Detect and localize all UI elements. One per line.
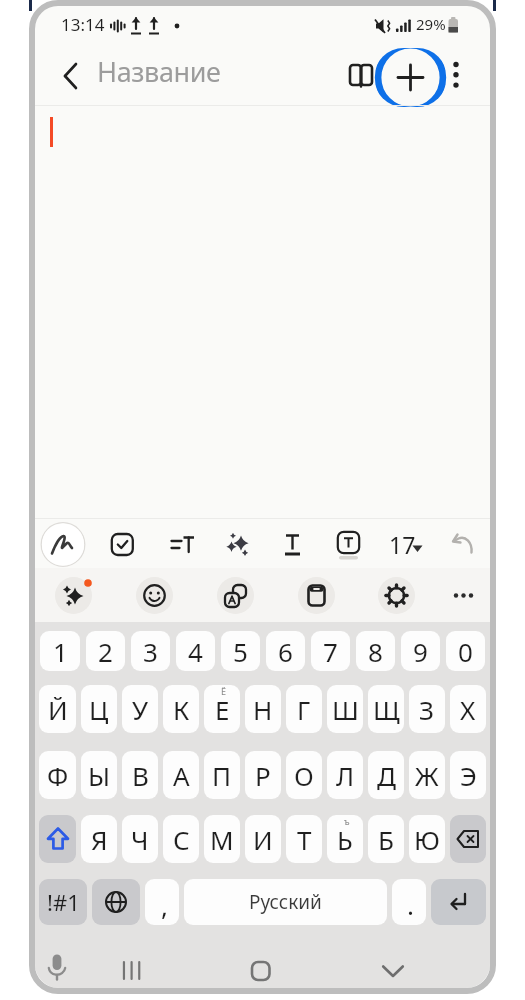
button[interactable]: Ф (39, 751, 76, 799)
button[interactable] (219, 523, 262, 566)
staticText: В (132, 758, 149, 793)
staticText: 0 (458, 634, 473, 669)
button[interactable] (39, 815, 76, 863)
button[interactable]: О (286, 751, 322, 799)
staticText: П (212, 758, 232, 793)
staticText: С (173, 822, 190, 857)
button[interactable] (55, 577, 92, 614)
button[interactable] (217, 577, 254, 614)
button[interactable]: 17 (379, 523, 431, 566)
staticText: Д (377, 758, 396, 793)
staticText: Я (91, 822, 108, 857)
button[interactable] (101, 523, 144, 566)
staticText: 3 (143, 634, 158, 669)
button[interactable]: Д (368, 751, 404, 799)
staticText: И (253, 822, 273, 857)
button[interactable] (431, 879, 486, 925)
button[interactable]: С (163, 815, 199, 863)
button[interactable]: Ь (327, 815, 363, 863)
staticText: Ж (415, 758, 439, 793)
staticText: 17 (389, 529, 416, 560)
button[interactable] (450, 815, 486, 863)
button[interactable]: Ч (122, 815, 158, 863)
button[interactable] (442, 54, 470, 96)
button[interactable]: М (204, 815, 240, 863)
staticText: Н (253, 692, 273, 727)
staticText: Р (255, 758, 271, 793)
button[interactable]: 1 (40, 631, 80, 671)
staticText: Г (297, 692, 311, 727)
staticText: Ч (131, 822, 149, 857)
button[interactable]: 2 (86, 631, 125, 671)
staticText: А (173, 758, 190, 793)
button[interactable]: И (245, 815, 281, 863)
staticText: 7 (323, 634, 338, 669)
staticText: 8 (368, 634, 383, 669)
button[interactable]: Ш (327, 685, 363, 733)
button[interactable] (35, 947, 79, 988)
button[interactable]: К (163, 685, 199, 733)
button[interactable]: 8 (356, 631, 395, 671)
button[interactable] (271, 523, 314, 566)
button[interactable]: Е (204, 685, 240, 733)
button[interactable]: . (392, 879, 426, 925)
button[interactable]: 4 (176, 631, 215, 671)
button[interactable]: Т (286, 815, 322, 863)
button[interactable] (298, 577, 335, 614)
staticText: Щ (373, 692, 400, 727)
button[interactable] (109, 948, 153, 988)
staticText: У (132, 692, 149, 727)
button[interactable]: З (409, 685, 445, 733)
button[interactable]: Ю (409, 815, 445, 863)
button[interactable] (161, 523, 204, 566)
button[interactable] (136, 577, 173, 614)
staticText: 2 (98, 634, 113, 669)
button[interactable]: Й (39, 685, 76, 733)
button[interactable]: 6 (266, 631, 305, 671)
button[interactable] (55, 56, 87, 96)
button[interactable] (39, 520, 87, 567)
button[interactable]: Г (286, 685, 322, 733)
button[interactable]: Р (245, 751, 281, 799)
button[interactable]: Л (327, 751, 363, 799)
button[interactable]: У (122, 685, 158, 733)
button[interactable]: 9 (401, 631, 440, 671)
button[interactable] (371, 948, 415, 988)
button[interactable]: Б (368, 815, 404, 863)
staticText: !#1 (47, 887, 80, 917)
button[interactable]: Ы (81, 751, 117, 799)
button[interactable]: Н (245, 685, 281, 733)
staticText: Название (97, 53, 221, 90)
button[interactable]: Русский (184, 879, 387, 925)
button[interactable] (445, 577, 482, 614)
button[interactable]: 0 (446, 631, 485, 671)
button[interactable] (341, 54, 381, 96)
button[interactable]: Щ (368, 685, 404, 733)
button[interactable]: Х (450, 685, 486, 733)
button[interactable]: Ж (409, 751, 445, 799)
button[interactable] (378, 577, 415, 614)
button[interactable]: В (122, 751, 158, 799)
button[interactable] (92, 879, 140, 925)
button[interactable]: 5 (221, 631, 260, 671)
button[interactable]: А (163, 751, 199, 799)
button[interactable]: П (204, 751, 240, 799)
button[interactable]: Я (81, 815, 117, 863)
staticText: М (210, 822, 234, 857)
staticText: О (294, 758, 314, 793)
staticText: Х (460, 692, 476, 727)
button[interactable]: , (145, 879, 179, 925)
button[interactable]: 7 (311, 631, 350, 671)
staticText: Ы (88, 758, 111, 793)
staticText: Ё (221, 685, 227, 697)
button[interactable] (327, 523, 370, 566)
button[interactable] (441, 523, 484, 566)
button[interactable]: 3 (131, 631, 170, 671)
button[interactable] (374, 48, 447, 107)
button[interactable]: Ц (81, 685, 117, 733)
button[interactable]: !#1 (39, 879, 87, 925)
button[interactable] (239, 949, 283, 988)
staticText: 1 (53, 634, 68, 669)
staticText: 4 (188, 634, 203, 669)
button[interactable]: Э (450, 751, 486, 799)
